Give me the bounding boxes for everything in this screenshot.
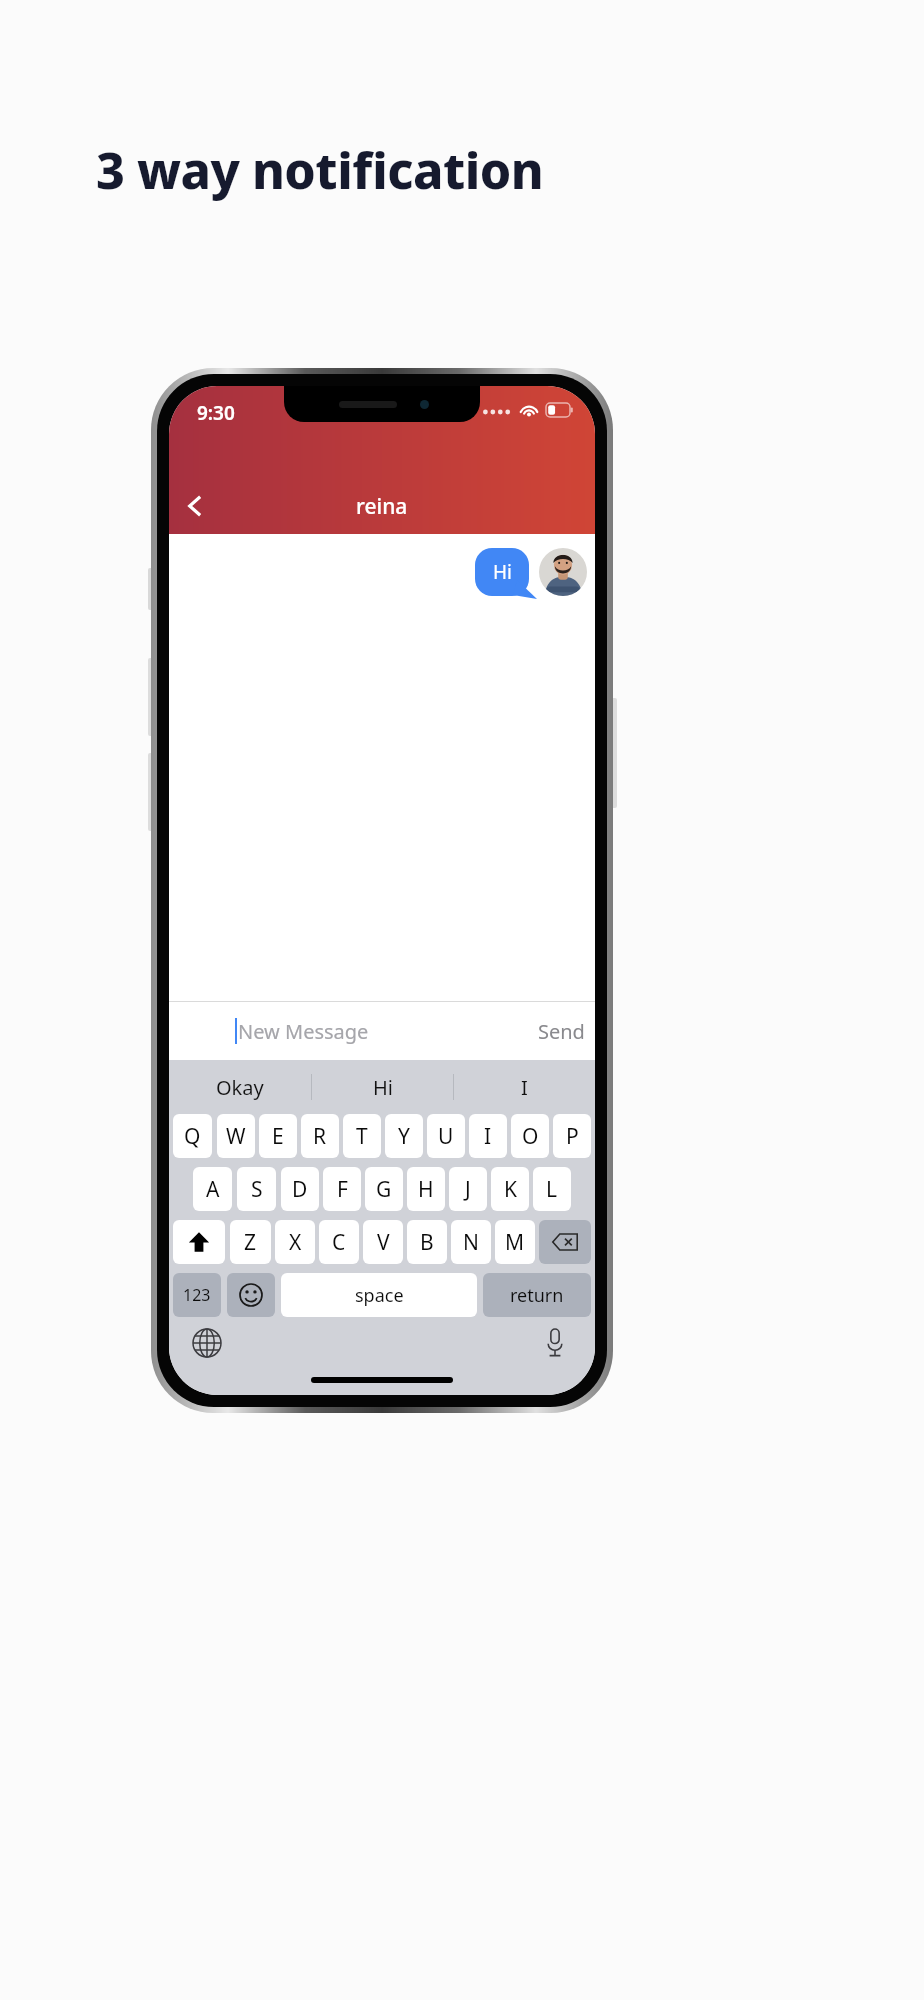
button[interactable]: A bbox=[193, 1167, 232, 1211]
staticText: M bbox=[505, 1228, 525, 1257]
staticText: D bbox=[292, 1175, 308, 1204]
button[interactable]: 123 bbox=[173, 1273, 221, 1317]
staticText: 9:30 bbox=[197, 400, 235, 426]
staticText: New Message bbox=[238, 1018, 369, 1045]
staticText: T bbox=[356, 1122, 368, 1151]
staticText: A bbox=[206, 1175, 220, 1204]
button[interactable]: Send bbox=[528, 1010, 595, 1053]
button[interactable]: return bbox=[483, 1273, 591, 1317]
staticText: I bbox=[484, 1122, 492, 1151]
button[interactable]: Emoji bbox=[227, 1273, 275, 1317]
button[interactable]: Backspace bbox=[539, 1220, 591, 1264]
staticText: Hi bbox=[373, 1074, 393, 1101]
staticText: S bbox=[251, 1175, 263, 1204]
button[interactable]: G bbox=[365, 1167, 403, 1211]
button[interactable]: B bbox=[407, 1220, 447, 1264]
button[interactable]: Z bbox=[230, 1220, 271, 1264]
button[interactable]: Dictate bbox=[535, 1323, 575, 1363]
button[interactable]: I bbox=[454, 1060, 595, 1114]
button[interactable]: Back bbox=[169, 480, 221, 532]
staticText: 123 bbox=[183, 1284, 211, 1306]
staticText: return bbox=[510, 1283, 564, 1308]
button[interactable]: Y bbox=[385, 1114, 423, 1158]
button[interactable]: F bbox=[323, 1167, 361, 1211]
staticText: Hi bbox=[493, 559, 512, 585]
button[interactable]: Change keyboard bbox=[187, 1323, 227, 1363]
staticText: E bbox=[272, 1122, 284, 1151]
staticText: V bbox=[377, 1228, 390, 1257]
button[interactable]: N bbox=[451, 1220, 491, 1264]
staticText: P bbox=[566, 1122, 579, 1151]
button[interactable]: H bbox=[407, 1167, 445, 1211]
button[interactable]: space bbox=[281, 1273, 477, 1317]
staticText: U bbox=[438, 1122, 454, 1151]
staticText: K bbox=[504, 1175, 517, 1204]
button[interactable]: P bbox=[553, 1114, 591, 1158]
button[interactable]: X bbox=[275, 1220, 315, 1264]
button[interactable]: L bbox=[533, 1167, 571, 1211]
staticText: N bbox=[463, 1228, 479, 1257]
button[interactable]: E bbox=[259, 1114, 297, 1158]
button[interactable]: R bbox=[301, 1114, 339, 1158]
staticText: Send bbox=[538, 1018, 585, 1045]
button[interactable]: Hi bbox=[312, 1060, 453, 1114]
staticText: I bbox=[521, 1074, 528, 1101]
button[interactable]: Q bbox=[173, 1114, 212, 1158]
button[interactable]: D bbox=[281, 1167, 319, 1211]
staticText: X bbox=[289, 1228, 302, 1257]
staticText: Z bbox=[244, 1228, 257, 1257]
button[interactable]: W bbox=[217, 1114, 255, 1158]
button[interactable]: Shift bbox=[173, 1220, 225, 1264]
button[interactable]: K bbox=[491, 1167, 529, 1211]
staticText: Okay bbox=[216, 1074, 264, 1101]
button[interactable]: M bbox=[495, 1220, 535, 1264]
staticText: W bbox=[226, 1122, 246, 1151]
staticText: H bbox=[418, 1175, 434, 1204]
staticText: L bbox=[546, 1175, 558, 1204]
button[interactable]: V bbox=[363, 1220, 403, 1264]
staticText: J bbox=[465, 1175, 471, 1204]
button[interactable]: O bbox=[511, 1114, 549, 1158]
staticText: Q bbox=[184, 1122, 201, 1151]
staticText: C bbox=[332, 1228, 346, 1257]
button[interactable]: U bbox=[427, 1114, 465, 1158]
staticText: R bbox=[313, 1122, 327, 1151]
staticText: F bbox=[337, 1175, 348, 1204]
staticText: O bbox=[522, 1122, 539, 1151]
button[interactable]: I bbox=[469, 1114, 507, 1158]
button[interactable]: J bbox=[449, 1167, 487, 1211]
staticText: 3 way notification bbox=[96, 136, 544, 204]
button[interactable]: Okay bbox=[169, 1060, 311, 1114]
staticText: reina bbox=[356, 492, 408, 521]
button[interactable]: T bbox=[343, 1114, 381, 1158]
button[interactable]: S bbox=[237, 1167, 276, 1211]
staticText: B bbox=[420, 1228, 434, 1257]
staticText: Y bbox=[398, 1122, 410, 1151]
staticText: G bbox=[376, 1175, 392, 1204]
staticText: space bbox=[355, 1283, 404, 1308]
button[interactable]: C bbox=[319, 1220, 359, 1264]
